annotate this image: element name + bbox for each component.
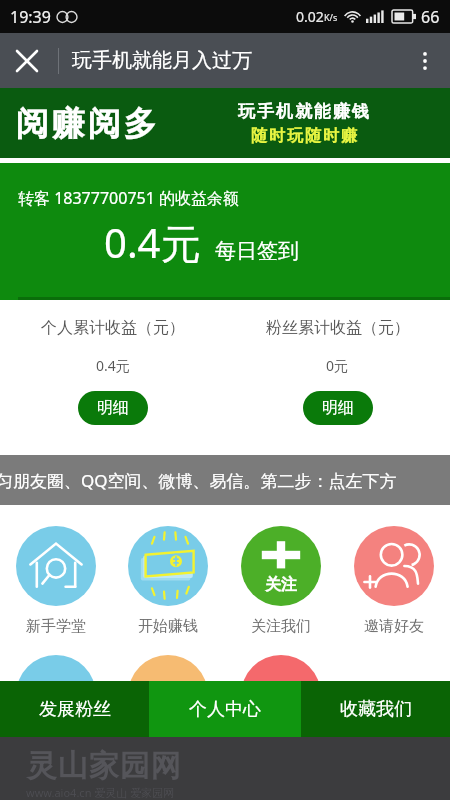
button[interactable]: 新手学堂 [0, 524, 112, 638]
staticText: 0元 [326, 356, 349, 375]
staticText: 关注我们 [251, 617, 311, 636]
staticText: 转客 18377700751 的收益余额 [18, 187, 239, 209]
button[interactable]: More options [400, 36, 450, 86]
button[interactable]: Close [0, 34, 54, 88]
staticText: 阅赚阅多 [14, 103, 158, 145]
staticText: 收藏我们 [340, 698, 412, 721]
staticText: 邀请好友 [364, 617, 424, 636]
button[interactable]: 每日签到 [215, 238, 299, 270]
staticText: 关注 [265, 575, 297, 595]
staticText: 0.4元 [104, 215, 201, 270]
staticText: 粉丝累计收益（元） [266, 318, 410, 338]
staticText: 个人累计收益（元） [41, 318, 185, 338]
staticText: 新手学堂 [26, 617, 86, 636]
staticText: K/s [324, 11, 338, 23]
staticText: 每日签到 [215, 238, 299, 264]
staticText: 玩手机就能赚钱 [237, 101, 370, 122]
staticText: 0.4元 [96, 356, 130, 375]
staticText: www.aio4.cn 爱灵山 爱家园网 [26, 785, 175, 800]
button[interactable]: 开始赚钱 [112, 524, 224, 638]
staticText: 个人中心 [189, 698, 261, 721]
staticText: 灵山家园网 [26, 747, 181, 785]
staticText: 匀朋友圈、QQ空间、微博、易信。第二步：点左下方 [0, 469, 397, 492]
staticText: 开始赚钱 [138, 617, 198, 636]
staticText: 随时玩随时赚 [250, 126, 358, 146]
staticText: 发展粉丝 [39, 698, 111, 721]
button[interactable]: 明细 [78, 391, 148, 425]
staticText: 明细 [322, 398, 354, 418]
button[interactable]: 明细 [303, 391, 373, 425]
staticText: 玩手机就能月入过万 [72, 48, 252, 73]
button[interactable]: 个人中心 [149, 681, 301, 737]
button[interactable]: 关注 [224, 524, 337, 638]
button[interactable]: 发展粉丝 [0, 681, 149, 737]
button[interactable]: 邀请好友 [337, 524, 450, 638]
button[interactable]: 收藏我们 [301, 681, 450, 737]
staticText: 0.02 [296, 7, 324, 26]
staticText: 明细 [97, 398, 129, 418]
staticText: 66 [421, 6, 440, 28]
staticText: 19:39 [10, 6, 51, 28]
